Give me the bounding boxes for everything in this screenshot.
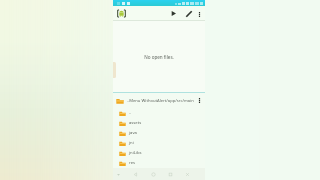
button[interactable]: AIDE menu (115, 7, 128, 20)
button[interactable]: Folder options (196, 97, 203, 104)
staticText: No open files. (144, 54, 174, 60)
button[interactable]: Back (131, 170, 139, 178)
staticText: jniLibs (129, 150, 142, 156)
staticText: .. (129, 110, 132, 116)
staticText: jni (129, 140, 134, 146)
button[interactable]: res (119, 158, 205, 168)
button[interactable]: Recent apps (166, 170, 174, 178)
button[interactable]: Screenshot (183, 170, 191, 178)
button[interactable]: Open project drawer (113, 62, 116, 78)
button[interactable]: Run (167, 7, 180, 20)
staticText: ..Menu WithoutAlert/app/src/main (127, 98, 194, 104)
button[interactable]: Home (149, 170, 157, 178)
button[interactable]: assets (119, 118, 205, 128)
button[interactable]: Hide keyboard (114, 170, 122, 178)
button[interactable]: ..Menu WithoutAlert/app/src/main (113, 93, 205, 108)
button[interactable]: Edit (182, 7, 195, 20)
button[interactable]: More options (193, 8, 205, 20)
button[interactable]: java (119, 128, 205, 138)
staticText: java (129, 130, 137, 136)
staticText: res (129, 160, 136, 166)
button[interactable]: jniLibs (119, 148, 205, 158)
button[interactable]: jni (119, 138, 205, 148)
staticText: assets (129, 120, 142, 126)
button[interactable]: .. (119, 108, 205, 118)
